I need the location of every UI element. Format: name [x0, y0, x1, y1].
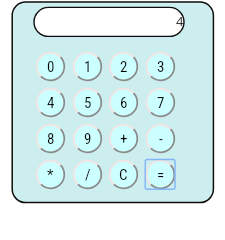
staticText: 9 — [84, 130, 92, 148]
button[interactable]: - — [145, 123, 176, 154]
button[interactable]: 4 — [35, 87, 66, 118]
button[interactable]: 1 — [72, 51, 103, 82]
button[interactable]: 8 — [35, 123, 66, 154]
staticText: 5 — [84, 94, 92, 112]
staticText: 6 — [120, 94, 128, 112]
staticText: 2 — [120, 58, 128, 76]
staticText: / — [85, 166, 91, 184]
staticText: 7 — [157, 94, 165, 112]
staticText: 0 — [47, 58, 55, 76]
button[interactable]: 5 — [72, 87, 103, 118]
staticText: 4 — [47, 94, 55, 112]
staticText: 3 — [157, 58, 165, 76]
button[interactable]: 7 — [145, 87, 176, 118]
staticText: = — [157, 166, 165, 184]
staticText: 8 — [47, 130, 55, 148]
staticText: * — [47, 166, 54, 184]
staticText: C — [119, 166, 128, 184]
button[interactable]: + — [108, 123, 139, 154]
button[interactable]: 3 — [145, 51, 176, 82]
button[interactable]: 6 — [108, 87, 139, 118]
button[interactable]: 0 — [35, 51, 66, 82]
staticText: + — [120, 130, 128, 148]
button[interactable]: = — [145, 159, 176, 190]
button[interactable]: 9 — [72, 123, 103, 154]
staticText: 1 — [84, 58, 92, 76]
button[interactable]: Display — [34, 7, 184, 36]
button[interactable]: 2 — [108, 51, 139, 82]
staticText: - — [159, 130, 163, 148]
button[interactable]: / — [72, 159, 103, 190]
button[interactable]: * — [35, 159, 66, 190]
staticText: 4 — [176, 12, 184, 30]
button[interactable]: C — [108, 159, 139, 190]
